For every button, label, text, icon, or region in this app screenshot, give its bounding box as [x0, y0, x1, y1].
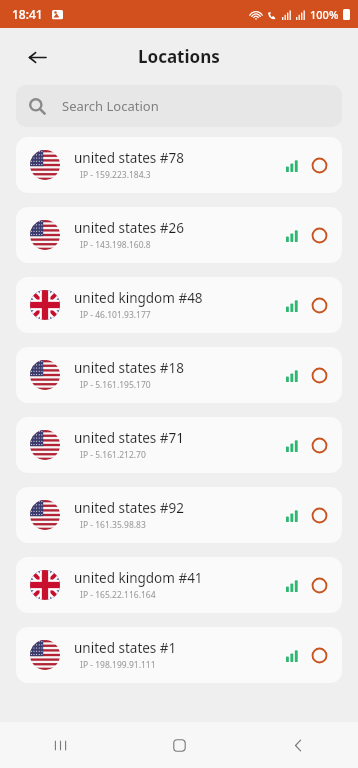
staticText: united states #26 [74, 219, 185, 237]
button[interactable]: united kingdom #48 [16, 277, 342, 333]
staticText: united kingdom #48 [74, 289, 203, 307]
button[interactable]: united states #92 [16, 487, 342, 543]
staticText: united states #1 [74, 639, 177, 657]
button[interactable]: united kingdom #41 [16, 557, 342, 613]
staticText: IP - 159.223.184.3 [80, 169, 151, 181]
staticText: IP - 5.161.195.170 [80, 379, 151, 391]
staticText: 100% [310, 7, 339, 22]
staticText: IP - 198.199.91.111 [80, 659, 156, 671]
staticText: IP - 46.101.93.177 [80, 309, 151, 321]
button[interactable]: united states #71 [16, 417, 342, 473]
button[interactable]: Back [18, 38, 56, 76]
button[interactable]: united states #78 [16, 137, 342, 193]
staticText: Search Location [62, 97, 159, 115]
staticText: IP - 165.22.116.164 [80, 589, 156, 601]
staticText: united kingdom #41 [74, 569, 203, 587]
button[interactable]: Search Location [16, 85, 342, 127]
staticText: IP - 143.198.160.8 [80, 239, 151, 251]
staticText: IP - 161.35.98.83 [80, 519, 146, 531]
button[interactable]: Recents [38, 723, 82, 767]
button[interactable]: united states #1 [16, 627, 342, 683]
staticText: IP - 5.161.212.70 [80, 449, 146, 461]
staticText: united states #18 [74, 359, 185, 377]
button[interactable]: united states #26 [16, 207, 342, 263]
button[interactable]: Back [276, 723, 320, 767]
staticText: 18:41 [12, 6, 43, 22]
staticText: Locations [138, 45, 220, 68]
staticText: united states #71 [74, 429, 185, 447]
button[interactable]: united states #18 [16, 347, 342, 403]
staticText: united states #78 [74, 149, 185, 167]
button[interactable]: Home [157, 723, 201, 767]
staticText: united states #92 [74, 499, 185, 517]
